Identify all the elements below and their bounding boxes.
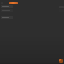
button[interactable] xyxy=(9,2,18,4)
button[interactable] xyxy=(1,16,13,19)
button[interactable]: Add xyxy=(59,59,63,63)
button[interactable] xyxy=(1,5,13,8)
button[interactable] xyxy=(1,9,13,12)
